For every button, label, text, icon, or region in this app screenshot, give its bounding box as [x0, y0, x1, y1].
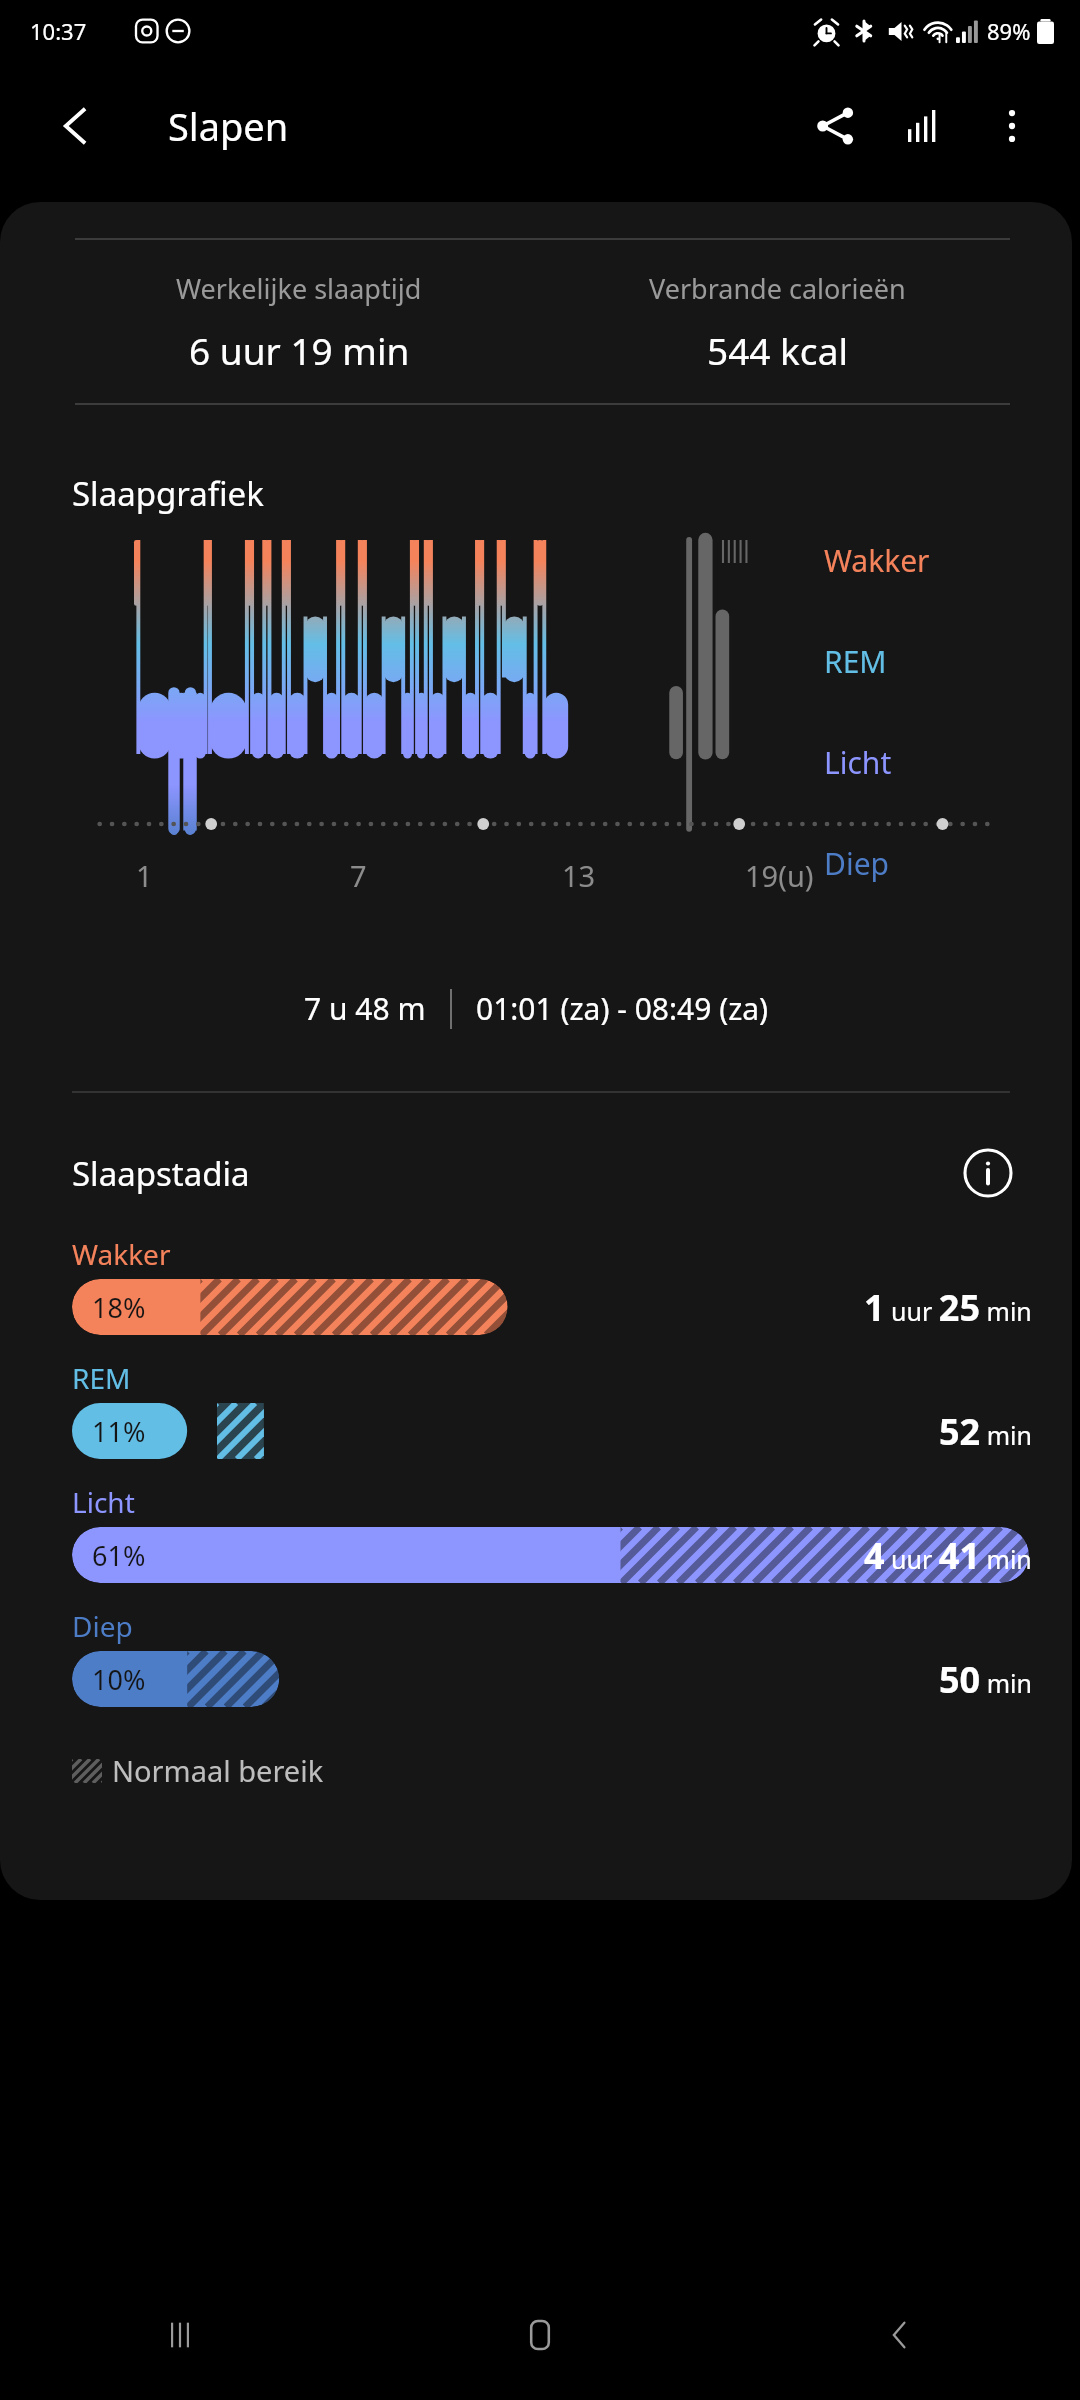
staticText: 10% — [92, 1661, 146, 1698]
staticText: 01:01 (za) - 08:49 (za) — [476, 988, 769, 1029]
button[interactable]: Recent apps — [0, 2270, 360, 2400]
button[interactable]: Licht — [72, 1483, 1032, 1583]
staticText: Licht — [72, 1483, 135, 1521]
staticText: 1 — [136, 856, 153, 895]
staticText: Verbrande calorieën — [649, 270, 906, 307]
staticText: Slapen — [168, 100, 289, 152]
staticText: 13 — [562, 856, 596, 895]
button[interactable]: Share — [802, 92, 870, 160]
button[interactable]: Wakker — [72, 1235, 1032, 1335]
button[interactable]: Back — [720, 2270, 1080, 2400]
staticText: 19(u) — [745, 856, 814, 895]
button[interactable]: More options — [978, 92, 1046, 160]
staticText: 52 min — [939, 1407, 1032, 1456]
button[interactable]: REM — [72, 1359, 1032, 1459]
staticText: Licht — [824, 742, 892, 783]
button[interactable]: Back — [44, 94, 108, 158]
staticText: 4 uur 41 min — [864, 1531, 1032, 1580]
staticText: 18% — [92, 1289, 146, 1326]
staticText: 11% — [92, 1413, 146, 1450]
button[interactable]: Diep — [72, 1607, 1032, 1707]
staticText: 61% — [92, 1537, 146, 1574]
button[interactable]: Statistics — [890, 92, 958, 160]
staticText: 544 kcal — [707, 325, 848, 375]
button[interactable]: Info — [960, 1145, 1016, 1201]
staticText: Werkelijke slaaptijd — [176, 270, 422, 307]
staticText: Wakker — [824, 540, 930, 581]
staticText: Diep — [72, 1607, 133, 1645]
button[interactable]: Home — [360, 2270, 720, 2400]
staticText: 10:37 — [30, 16, 87, 46]
staticText: Slaapstadia — [72, 1151, 960, 1196]
staticText: Normaal bereik — [112, 1751, 324, 1790]
staticText: 1 uur 25 min — [864, 1283, 1032, 1332]
staticText: 6 uur 19 min — [189, 325, 410, 375]
staticText: 50 min — [939, 1655, 1032, 1704]
staticText: Wakker — [72, 1235, 171, 1273]
staticText: 7 u 48 m — [304, 988, 426, 1029]
staticText: REM — [824, 641, 887, 682]
staticText: 7 — [350, 856, 367, 895]
staticText: REM — [72, 1359, 131, 1397]
staticText: Diep — [824, 843, 890, 884]
staticText: Slaapgrafiek — [72, 471, 264, 516]
staticText: 89% — [987, 16, 1031, 46]
